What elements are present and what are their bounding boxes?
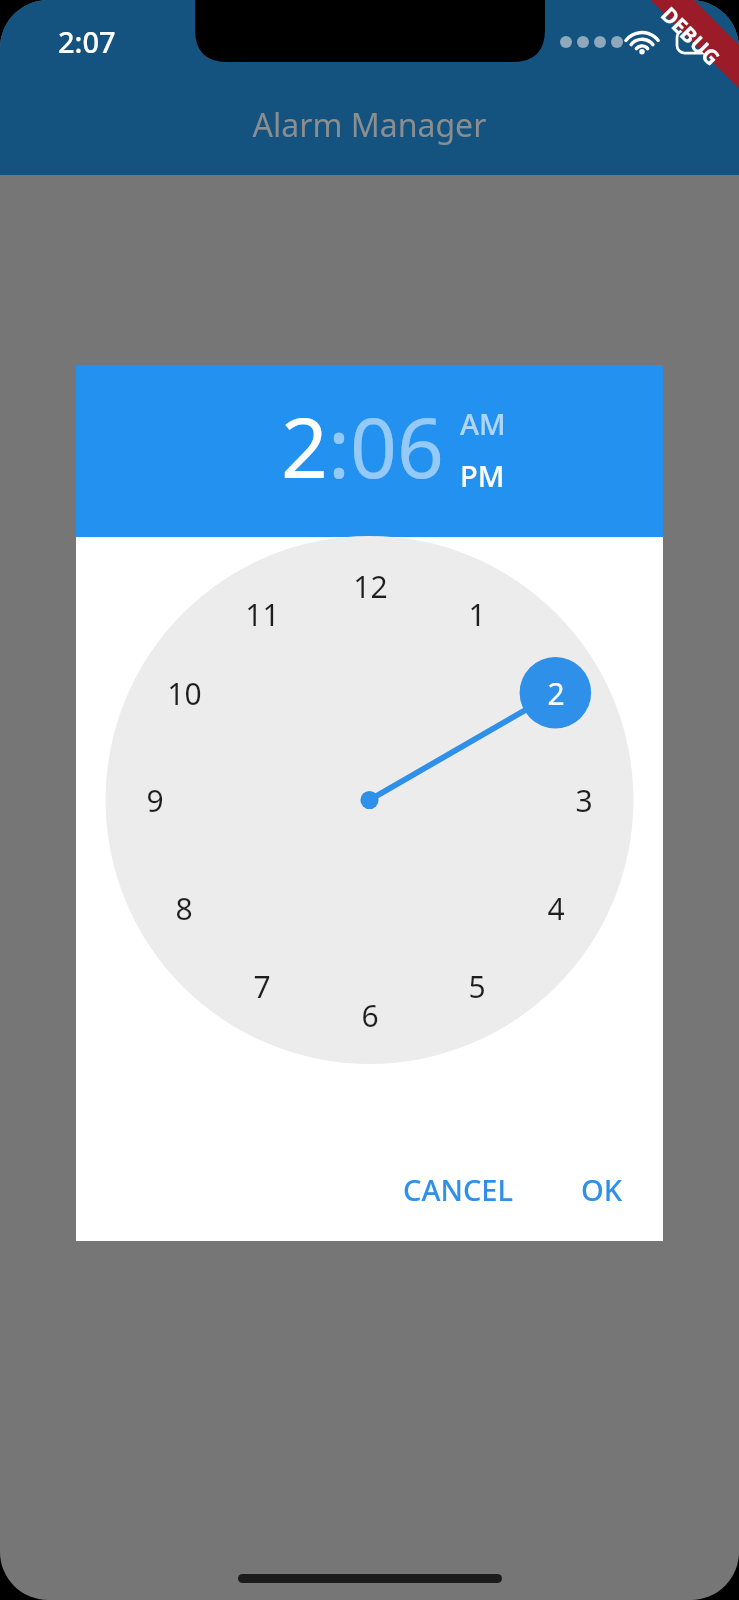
- button[interactable]: 5: [441, 950, 513, 1022]
- staticText: DEBUG: [654, 0, 726, 72]
- button[interactable]: 1: [441, 578, 513, 650]
- staticText: AM: [460, 404, 506, 443]
- staticText: 2:07: [58, 22, 116, 61]
- staticText: 2: [281, 390, 328, 502]
- staticText: 5: [468, 966, 486, 1007]
- button[interactable]: 11: [226, 578, 298, 650]
- staticText: 2: [547, 673, 565, 714]
- staticText: 9: [146, 780, 164, 821]
- button[interactable]: 12: [334, 550, 406, 622]
- button[interactable]: 2: [281, 390, 328, 502]
- button[interactable]: 06: [350, 390, 444, 502]
- button[interactable]: 3: [548, 764, 620, 836]
- staticText: :: [328, 390, 350, 502]
- staticText: 1: [468, 594, 486, 635]
- button[interactable]: 4: [520, 872, 592, 944]
- button[interactable]: PM: [460, 456, 505, 495]
- button[interactable]: 2: [520, 657, 592, 729]
- staticText: 8: [175, 888, 193, 929]
- staticText: 06: [350, 390, 444, 502]
- staticText: 7: [253, 966, 271, 1007]
- button[interactable]: AM: [460, 404, 506, 443]
- button[interactable]: 8: [148, 872, 220, 944]
- button[interactable]: 9: [119, 764, 191, 836]
- staticText: PM: [460, 456, 505, 495]
- staticText: Alarm Manager: [0, 103, 739, 147]
- staticText: CANCEL: [403, 1170, 513, 1209]
- staticText: 6: [361, 995, 379, 1036]
- staticText: 3: [575, 780, 593, 821]
- button[interactable]: 10: [148, 657, 220, 729]
- staticText: 11: [245, 594, 280, 635]
- button[interactable]: 7: [226, 950, 298, 1022]
- button[interactable]: 6: [334, 979, 406, 1051]
- staticText: 12: [353, 566, 388, 607]
- staticText: OK: [581, 1170, 623, 1209]
- button[interactable]: OK: [563, 1154, 641, 1225]
- staticText: 10: [167, 673, 202, 714]
- button[interactable]: CANCEL: [385, 1154, 531, 1225]
- staticText: 4: [547, 888, 565, 929]
